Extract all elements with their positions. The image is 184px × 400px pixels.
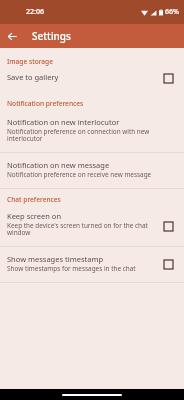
button[interactable]: Save to gallery [0,68,184,88]
button[interactable]: Keep screen on [0,206,184,246]
button[interactable]: Notification on new message [0,153,184,188]
staticText: 66% [165,7,179,17]
staticText: Notification preferences [7,99,184,108]
staticText: Notification preference on connection wi… [7,127,173,143]
staticText: Notification preference on receive new m… [7,170,152,179]
button[interactable]: Back [0,24,24,48]
staticText: Chat preferences [7,195,184,204]
staticText: Keep screen on [7,211,62,221]
staticText: Image storage [7,57,184,66]
staticText: Save to gallery [7,72,59,82]
staticText: Notification on new interlocutor [7,117,120,127]
staticText: Settings [32,29,71,43]
staticText: Show timestamps for messages in the chat [7,264,136,273]
staticText: Notification on new message [7,160,110,170]
staticText: Show messages timestamp [7,254,104,264]
staticText: 22:06 [26,7,44,17]
button[interactable]: Notification on new interlocutor [0,110,184,152]
staticText: Keep the device's screen turned on for t… [7,221,157,237]
button[interactable]: Show messages timestamp [0,247,184,282]
